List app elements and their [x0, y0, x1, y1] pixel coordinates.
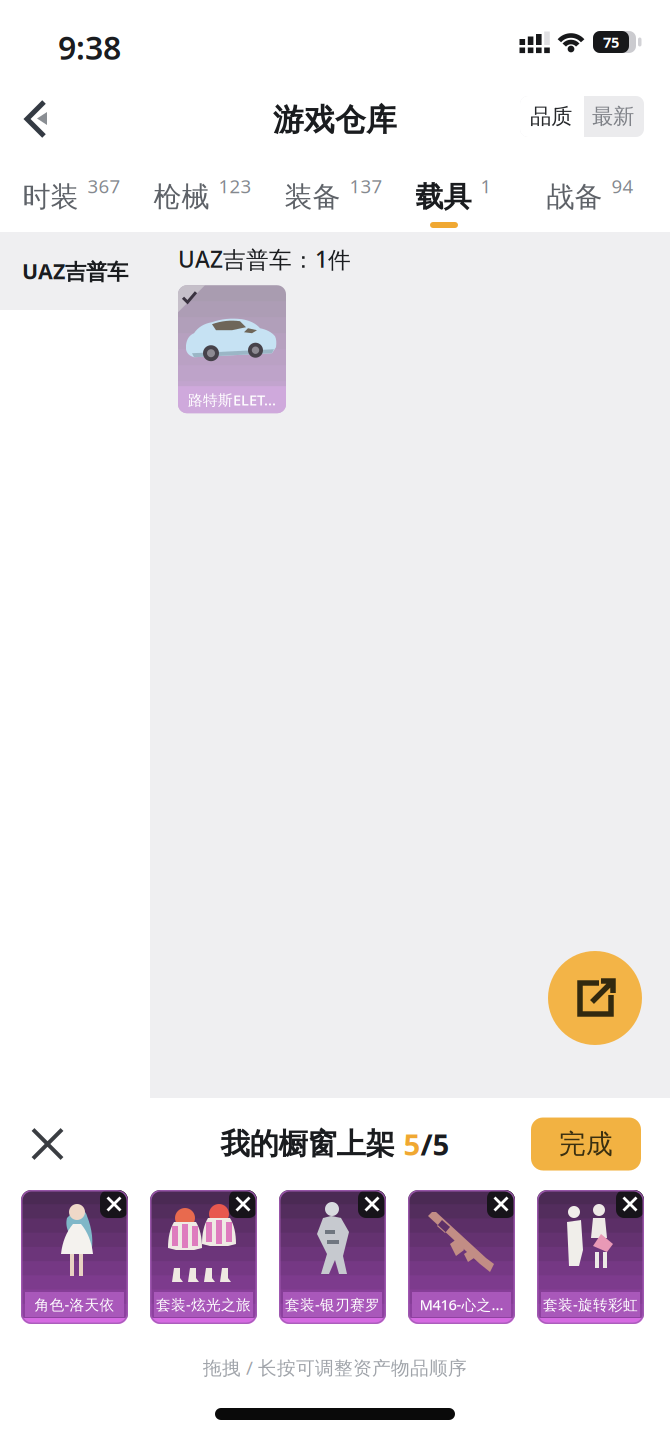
button[interactable]: 品质 [520, 96, 582, 137]
button[interactable]: 移除 套装-旋转彩虹 [616, 1190, 644, 1218]
staticText: 套装-炫光之旅 [156, 1295, 251, 1314]
staticText: 装备 [284, 180, 340, 214]
button[interactable]: 时装 [22, 174, 127, 228]
staticText: M416-心之... [419, 1295, 503, 1314]
button[interactable]: 分享橱窗 [548, 951, 642, 1045]
button[interactable]: 最新 [582, 96, 644, 137]
staticText: 载具 [415, 180, 471, 214]
staticText: 拖拽 / 长按可调整资产物品顺序 [203, 1355, 467, 1380]
button[interactable]: 移除 套装-炫光之旅 [229, 1190, 257, 1218]
staticText: 9:38 [58, 26, 121, 68]
button[interactable]: UAZ吉普车 [0, 232, 150, 310]
staticText: 路特斯ELET... [188, 390, 276, 409]
staticText: 94 [611, 174, 633, 198]
staticText: 367 [87, 174, 120, 198]
button[interactable]: 移除 套装-银刃赛罗 [358, 1190, 386, 1218]
button[interactable]: 载具 [415, 174, 520, 228]
button[interactable]: 套装-银刃赛罗 [279, 1190, 386, 1324]
button[interactable]: 角色-洛天依 [21, 1190, 128, 1324]
staticText: 5 [403, 1124, 420, 1163]
button[interactable]: 关闭 [0, 1129, 62, 1158]
button[interactable]: 完成 [531, 1117, 641, 1170]
staticText: 137 [349, 174, 382, 198]
staticText: /5 [420, 1124, 449, 1163]
staticText: 时装 [22, 180, 78, 214]
button[interactable]: 装备 [284, 174, 389, 228]
staticText: 75 [603, 32, 619, 52]
staticText: 战备 [546, 180, 602, 214]
button[interactable]: 套装-旋转彩虹 [537, 1190, 644, 1324]
button[interactable]: 移除 角色-洛天依 [100, 1190, 128, 1218]
staticText: UAZ吉普车：1件 [178, 244, 351, 274]
staticText: 完成 [559, 1128, 613, 1160]
button[interactable]: 枪械 [153, 174, 258, 228]
button[interactable]: 战备 [546, 174, 651, 228]
staticText: 最新 [592, 103, 634, 130]
staticText: 1 [480, 174, 491, 198]
staticText: 角色-洛天依 [34, 1295, 114, 1314]
staticText: 123 [218, 174, 251, 198]
staticText: UAZ吉普车 [22, 257, 128, 285]
button[interactable]: 返回 [0, 80, 56, 160]
staticText: 我的橱窗上架 [220, 1126, 403, 1162]
button[interactable]: 移除 M416-心之... [487, 1190, 515, 1218]
staticText: 套装-旋转彩虹 [543, 1295, 638, 1314]
staticText: 游戏仓库 [273, 101, 397, 139]
staticText: 枪械 [153, 180, 209, 214]
staticText: 套装-银刃赛罗 [285, 1295, 380, 1314]
button[interactable]: 路特斯ELET... [178, 285, 286, 413]
button[interactable]: 套装-炫光之旅 [150, 1190, 257, 1324]
button[interactable]: M416-心之... [408, 1190, 515, 1324]
staticText: 品质 [530, 103, 572, 130]
